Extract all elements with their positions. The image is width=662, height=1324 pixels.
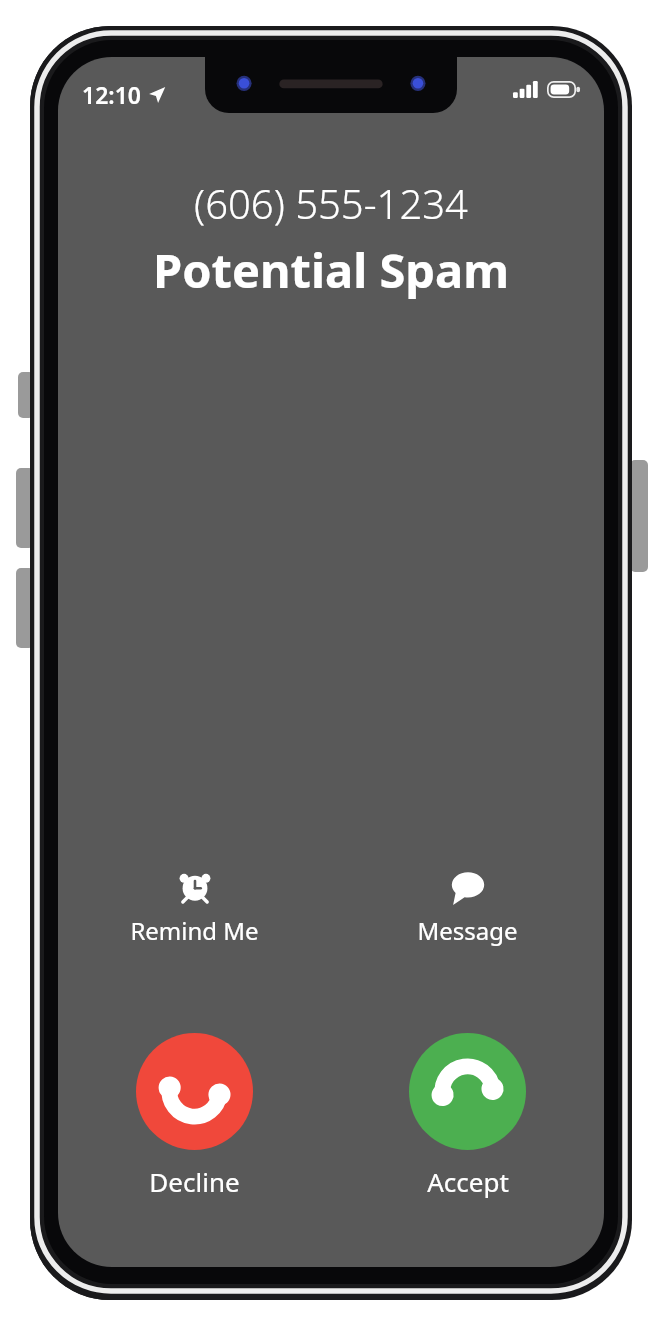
other: Decline xyxy=(136,1033,253,1150)
staticText: Decline xyxy=(149,1164,240,1199)
staticText: Message xyxy=(417,914,518,947)
button[interactable]: Message xyxy=(331,869,604,947)
staticText: 12:10 xyxy=(82,79,141,110)
other: Message xyxy=(450,869,486,905)
staticText: Remind Me xyxy=(130,914,259,947)
button[interactable]: Decline xyxy=(58,1033,331,1199)
button[interactable]: Accept xyxy=(331,1033,604,1199)
other: Remind Me xyxy=(177,869,213,905)
button[interactable]: Remind Me xyxy=(58,869,331,947)
staticText: (606) 555-1234 xyxy=(194,176,468,230)
other: Accept xyxy=(409,1033,526,1150)
staticText: Potential Spam xyxy=(153,238,509,302)
staticText: Accept xyxy=(427,1164,509,1199)
